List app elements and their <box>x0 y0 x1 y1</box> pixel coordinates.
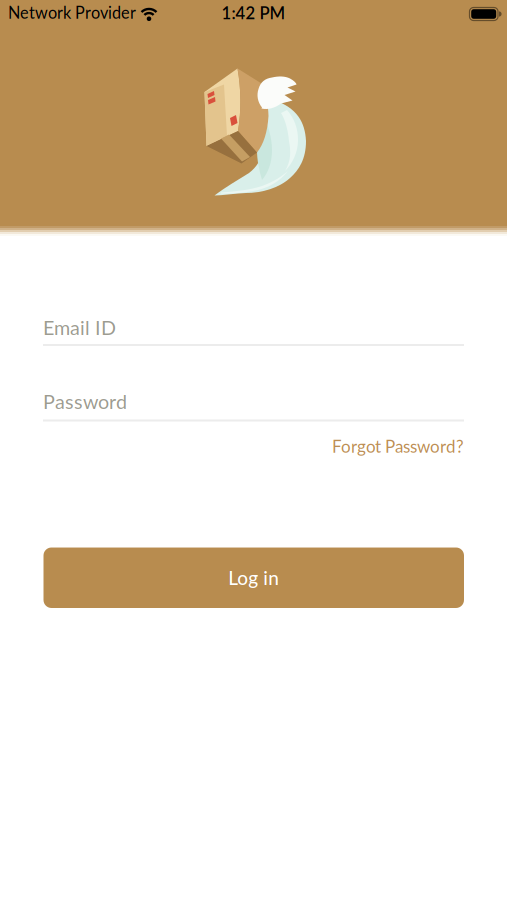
staticText: 1:42 PM <box>221 3 285 23</box>
staticText: Log in <box>228 566 279 589</box>
staticText: Network Provider <box>8 3 136 22</box>
textField[interactable]: Password <box>43 389 464 413</box>
button[interactable]: Forgot Password? <box>332 436 464 456</box>
textField[interactable]: Email ID <box>43 315 464 339</box>
staticText: Password <box>43 389 127 413</box>
staticText: Forgot Password? <box>332 436 464 456</box>
staticText: Email ID <box>43 315 116 339</box>
button[interactable]: Log in <box>43 547 464 608</box>
